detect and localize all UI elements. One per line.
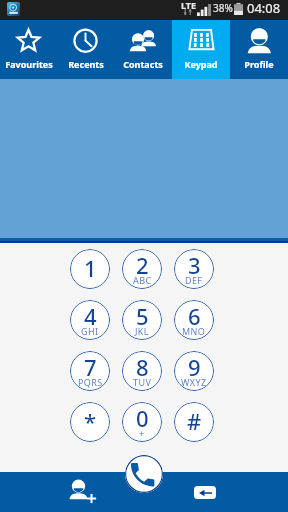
staticText: 2 (136, 250, 149, 280)
staticText: 1 (84, 253, 97, 283)
button[interactable]: 8 (122, 351, 162, 391)
button[interactable]: 2 (122, 249, 162, 289)
button[interactable]: 1 (70, 249, 110, 289)
staticText: 4 (84, 301, 97, 331)
button[interactable]: # (174, 402, 214, 442)
staticText: LTE (181, 0, 197, 11)
button[interactable]: 3 (174, 249, 214, 289)
button[interactable]: 7 (70, 351, 110, 391)
staticText: + (139, 427, 145, 439)
button[interactable]: Backspace (191, 482, 219, 502)
staticText: GHI (81, 325, 99, 337)
button[interactable]: Keypad (172, 20, 230, 79)
staticText: 38% (213, 1, 233, 15)
button[interactable]: Call (125, 455, 163, 493)
button[interactable]: 5 (122, 300, 162, 340)
staticText: 0 (136, 403, 149, 433)
staticText: Profile (244, 58, 274, 70)
button[interactable]: Favourites (0, 20, 57, 79)
button[interactable]: 4 (70, 300, 110, 340)
button[interactable]: Profile (230, 20, 288, 79)
staticText: Favourites (5, 58, 53, 70)
staticText: 7 (84, 352, 97, 382)
button[interactable]: * (70, 402, 110, 442)
staticText: * (84, 406, 97, 436)
staticText: 9 (188, 352, 201, 382)
staticText: Keypad (184, 58, 218, 70)
staticText: ABC (133, 274, 152, 286)
staticText: MNO (182, 325, 206, 337)
button[interactable]: 0 (122, 402, 162, 442)
button[interactable]: 9 (174, 351, 214, 391)
staticText: 3 (188, 250, 201, 280)
button[interactable]: Add contact (69, 478, 97, 506)
staticText: TUV (133, 376, 152, 388)
staticText: DEF (185, 274, 203, 286)
staticText: 5 (136, 301, 149, 331)
staticText: Recents (68, 58, 104, 70)
staticText: JKL (135, 325, 149, 337)
staticText: 6 (188, 301, 201, 331)
staticText: 04:08 (247, 0, 281, 17)
staticText: PQRS (78, 376, 103, 388)
button[interactable]: Recents (57, 20, 114, 79)
staticText: Contacts (123, 58, 163, 70)
staticText: WXYZ (181, 376, 207, 388)
staticText: # (187, 406, 202, 436)
staticText: 8 (136, 352, 149, 382)
button[interactable]: 6 (174, 300, 214, 340)
button[interactable]: Contacts (114, 20, 172, 79)
